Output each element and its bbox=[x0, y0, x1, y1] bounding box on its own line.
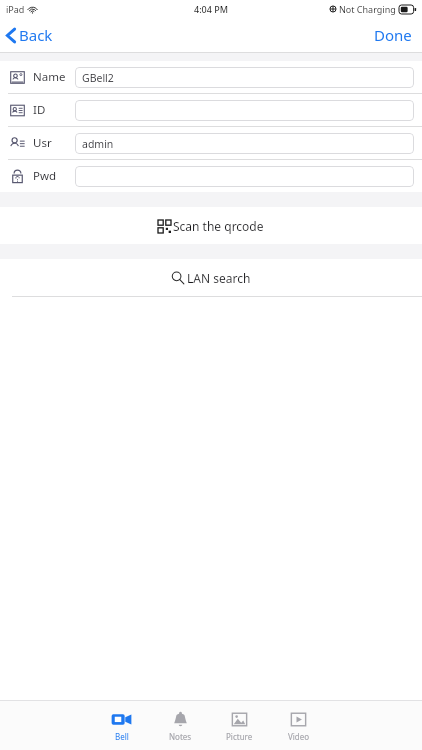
button[interactable]: Usr bbox=[0, 127, 422, 159]
staticText: Back bbox=[19, 25, 53, 45]
staticText: Scan the qrcode bbox=[173, 218, 264, 234]
button[interactable]: LAN search bbox=[0, 259, 422, 296]
button[interactable]: Notes bbox=[151, 705, 210, 747]
staticText: LAN search bbox=[187, 270, 251, 286]
staticText: Done bbox=[374, 25, 412, 45]
staticText: Video bbox=[288, 731, 310, 742]
staticText: 4:04 PM bbox=[194, 3, 228, 15]
button[interactable]: Scan the qrcode bbox=[0, 207, 422, 244]
staticText: Pwd bbox=[33, 168, 57, 184]
staticText: Usr bbox=[33, 135, 52, 151]
button[interactable]: ID bbox=[0, 94, 422, 126]
button[interactable]: Pwd bbox=[0, 160, 422, 192]
staticText: iPad bbox=[6, 3, 25, 15]
staticText: admin bbox=[82, 137, 114, 151]
staticText: Bell bbox=[115, 731, 129, 742]
staticText: Not Charging bbox=[339, 3, 396, 15]
staticText: GBell2 bbox=[82, 71, 114, 85]
button[interactable]: Back bbox=[0, 21, 63, 49]
staticText: Notes bbox=[169, 731, 192, 742]
staticText: Name bbox=[33, 69, 66, 85]
button[interactable]: Name bbox=[0, 61, 422, 93]
button[interactable]: Video bbox=[269, 705, 328, 747]
staticText: ID bbox=[33, 102, 46, 118]
button[interactable]: Bell bbox=[92, 705, 151, 747]
button[interactable]: Picture bbox=[210, 705, 269, 747]
button[interactable]: Done bbox=[362, 21, 422, 49]
staticText: Picture bbox=[226, 731, 253, 742]
